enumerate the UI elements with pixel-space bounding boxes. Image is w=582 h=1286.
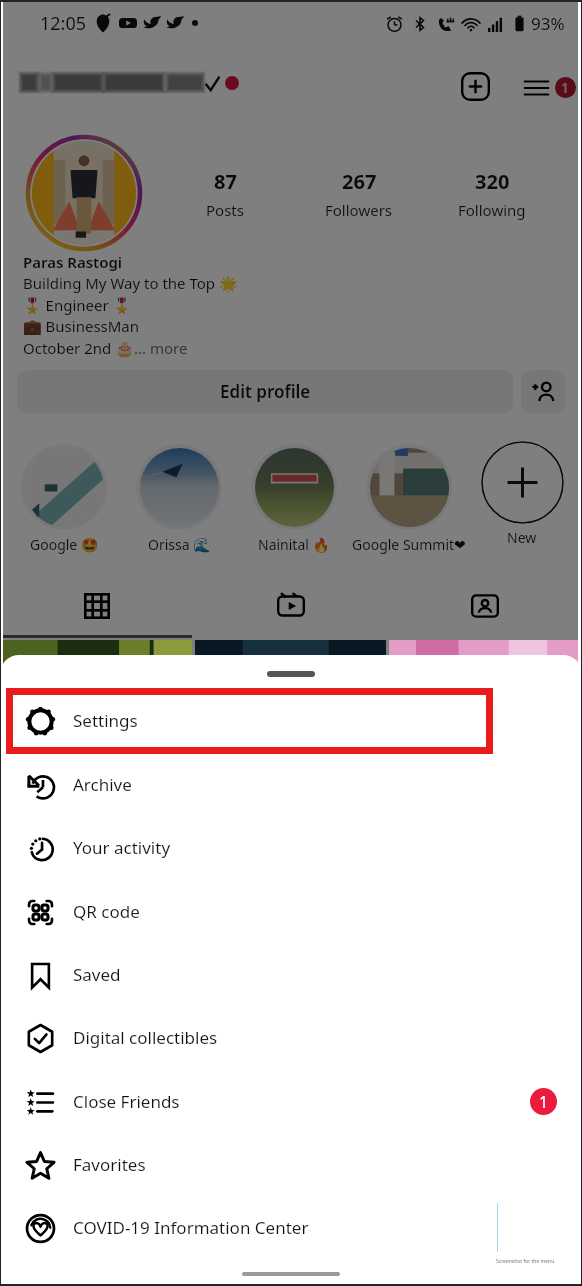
staticText: 1 bbox=[561, 78, 570, 97]
staticText: 87 bbox=[214, 168, 237, 195]
staticText: October 2nd 🎂 bbox=[23, 338, 134, 358]
staticText: Followers bbox=[325, 200, 393, 220]
staticText: Favorites bbox=[73, 1153, 146, 1176]
staticText: ... more bbox=[134, 338, 188, 358]
button[interactable]: Edit profile bbox=[17, 370, 513, 413]
button[interactable]: Digital collectibles bbox=[0, 1006, 582, 1069]
staticText: 💼 BusinessMan bbox=[23, 316, 140, 336]
staticText: 93% bbox=[531, 12, 565, 35]
staticText: Nainital 🔥 bbox=[258, 535, 330, 554]
staticText: 12:05 bbox=[40, 11, 87, 36]
button[interactable]: Reels bbox=[194, 583, 388, 629]
button[interactable]: Menu bbox=[513, 62, 561, 110]
staticText: Your activity bbox=[73, 836, 171, 859]
staticText: Paras Rastogi bbox=[23, 252, 123, 272]
staticText: 🎖️ Engineer 🎖️ bbox=[23, 295, 132, 315]
button[interactable]: Saved bbox=[0, 943, 582, 1006]
staticText: New bbox=[507, 528, 537, 547]
staticText: Following bbox=[458, 200, 526, 220]
staticText: Digital collectibles bbox=[73, 1026, 218, 1049]
staticText: Settings bbox=[73, 709, 138, 732]
button[interactable]: COVID-19 Information Center bbox=[0, 1196, 582, 1259]
button[interactable]: Archive bbox=[0, 753, 582, 816]
staticText: Building My Way to the Top 🌟 bbox=[23, 273, 238, 293]
staticText: Orissa 🌊 bbox=[148, 535, 211, 554]
staticText: Close Friends bbox=[73, 1090, 180, 1113]
staticText: COVID-19 Information Center bbox=[73, 1216, 309, 1239]
staticText: QR code bbox=[73, 900, 140, 923]
staticText: 267 bbox=[342, 168, 377, 195]
button[interactable]: Discover people bbox=[521, 370, 565, 413]
staticText: Google Summit❤️ bbox=[352, 535, 466, 554]
button[interactable]: QR code bbox=[0, 880, 582, 943]
button[interactable]: New highlight bbox=[481, 441, 564, 524]
button[interactable] bbox=[251, 444, 337, 530]
button[interactable]: Settings bbox=[0, 689, 582, 752]
button[interactable]: Posts grid bbox=[0, 583, 194, 629]
button[interactable] bbox=[136, 444, 222, 530]
button[interactable]: Your activity bbox=[0, 816, 582, 879]
staticText: Archive bbox=[73, 773, 132, 796]
button[interactable]: Favorites bbox=[0, 1133, 582, 1196]
button[interactable] bbox=[21, 444, 107, 530]
staticText: Edit profile bbox=[220, 380, 311, 403]
staticText: Google 🤩 bbox=[30, 535, 99, 554]
staticText: 320 bbox=[475, 168, 510, 195]
staticText: Posts bbox=[206, 200, 244, 220]
staticText: 1 bbox=[539, 1091, 549, 1113]
button[interactable]: Close Friends bbox=[0, 1070, 582, 1133]
button[interactable]: Tagged bbox=[388, 583, 582, 629]
staticText: Screenshot for the menu bbox=[496, 1258, 555, 1265]
staticText: Saved bbox=[73, 963, 121, 986]
button[interactable] bbox=[366, 444, 452, 530]
button[interactable]: Create bbox=[454, 65, 496, 107]
